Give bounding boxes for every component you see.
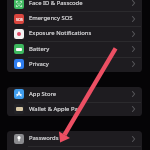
button[interactable] bbox=[7, 87, 142, 102]
staticText: Face ID & Passcode bbox=[29, 0, 83, 7]
button[interactable] bbox=[7, 11, 142, 26]
staticText: Privacy bbox=[29, 60, 49, 68]
button[interactable] bbox=[7, 26, 142, 41]
staticText: Emergency SOS bbox=[29, 14, 73, 22]
button[interactable] bbox=[7, 41, 142, 56]
staticText: SOS bbox=[16, 17, 23, 22]
other: Pointer arrow bbox=[0, 0, 150, 150]
button[interactable] bbox=[7, 131, 142, 146]
button[interactable] bbox=[7, 0, 142, 11]
button[interactable] bbox=[7, 57, 142, 72]
staticText: Passwords bbox=[29, 134, 59, 142]
staticText: Exposure Notifications bbox=[29, 29, 92, 37]
staticText: Wallet & Apple Pay bbox=[29, 105, 81, 113]
staticText: Battery bbox=[29, 45, 50, 53]
staticText: App Store bbox=[29, 90, 57, 98]
button[interactable] bbox=[7, 102, 142, 117]
